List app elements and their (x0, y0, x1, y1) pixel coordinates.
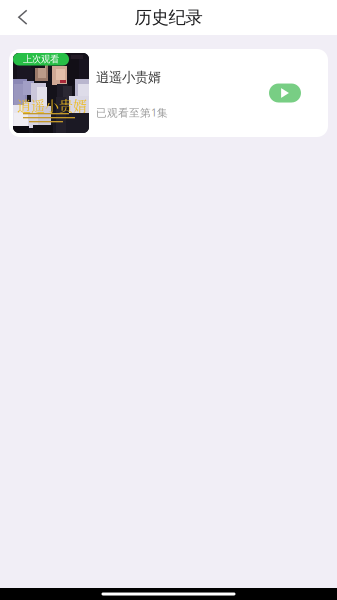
staticText: 逍遥小贵婿 (17, 95, 87, 115)
staticText: 历史纪录 (134, 7, 202, 28)
staticText: 已观看至第1集 (96, 105, 168, 120)
button[interactable]: 逍遥小贵婿 (9, 49, 328, 137)
staticText: 上次观看 (23, 53, 59, 65)
button[interactable]: Back (0, 0, 46, 35)
staticText: 逍遥小贵婿 (96, 69, 161, 85)
